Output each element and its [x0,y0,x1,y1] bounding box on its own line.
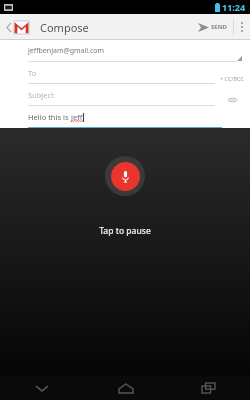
staticText: Compose [40,20,89,35]
staticText: Tap to pause [0,225,250,237]
staticText: + CC/BCC [220,75,244,82]
button[interactable]: Attach file [220,94,244,106]
button[interactable]: Home [84,376,167,400]
other: Attach file [228,97,237,103]
staticText: To [28,68,37,78]
staticText: SEND [211,23,227,31]
button[interactable]: Subject [28,90,215,106]
button[interactable]: Navigate up [4,14,32,40]
button[interactable]: + CC/BCC [220,72,244,84]
button[interactable]: Hello this is [28,112,222,128]
button[interactable]: Tap to pause [105,156,145,196]
button[interactable]: SEND [192,14,233,40]
staticText: jeffbenjam@gmail.com [28,46,105,56]
button[interactable]: Recent apps [167,376,250,400]
button[interactable]: jeffbenjam@gmail.com [28,46,242,62]
button[interactable]: To [28,68,215,84]
button[interactable]: More options [234,14,250,40]
staticText: Hello this is [28,112,71,122]
staticText: jeff [71,112,83,122]
button[interactable]: Hide keyboard [0,376,84,400]
staticText: Subject [28,90,54,100]
staticText: 11:24 [222,1,246,13]
